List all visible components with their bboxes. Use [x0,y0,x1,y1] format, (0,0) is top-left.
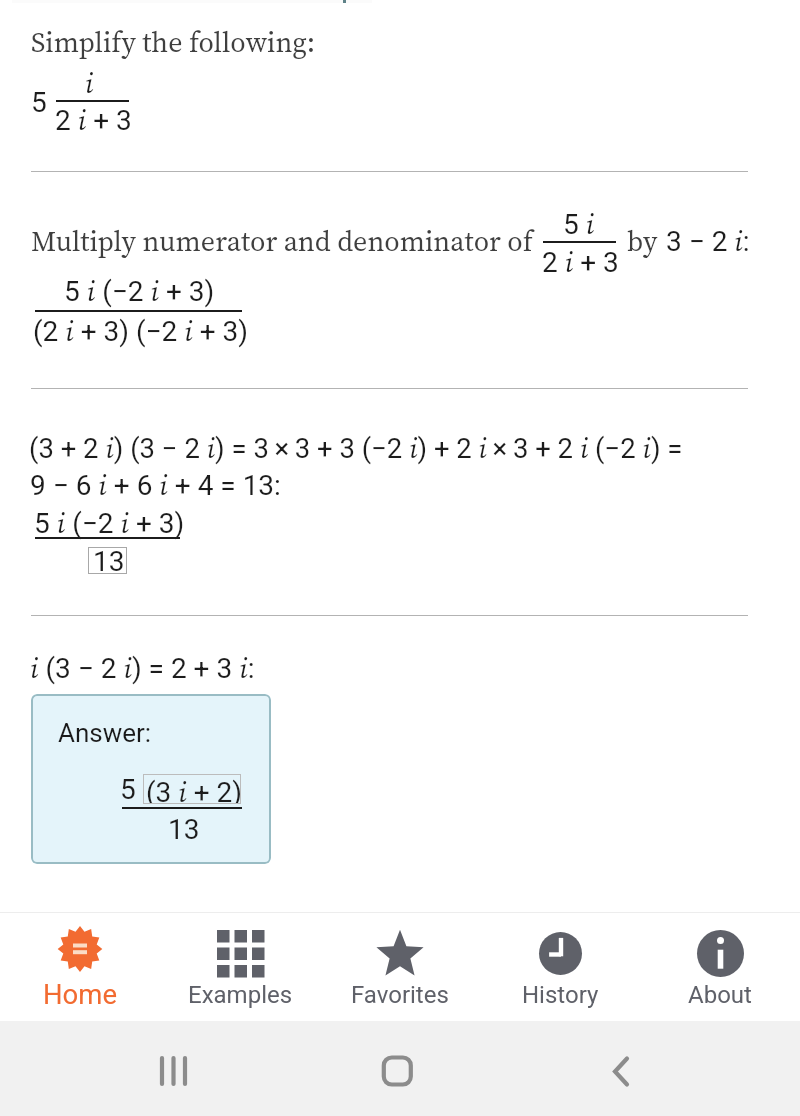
staticText: Answer: [58,718,152,748]
staticText: 13 [93,545,125,572]
staticText: (3 i + 2) [146,773,243,803]
staticText: i [85,64,94,102]
button[interactable]: About [640,912,800,1021]
button[interactable]: Home [0,912,160,1021]
staticText: 5 i (−2 i + 3) [34,504,185,542]
staticText: About [688,981,752,1009]
button[interactable]: Back [597,1046,646,1095]
staticText: 5 i [563,205,595,243]
staticText: 2 i + 3 [55,101,132,139]
staticText: Multiply numerator and denominator of [31,222,533,260]
button[interactable]: Examples [160,912,320,1021]
staticText: 13 [168,813,200,846]
button[interactable]: Favorites [320,912,480,1021]
staticText: 2 i + 3 [542,243,619,281]
button[interactable]: Recent apps [149,1046,198,1095]
staticText: Home [43,978,118,1010]
button[interactable]: History [480,912,640,1021]
staticText: (2 i + 3) (−2 i + 3) [33,312,249,350]
staticText: 9 − 6 i + 6 i + 4 = 13: [30,466,281,504]
staticText: i (3 − 2 i) = 2 + 3 i: [30,649,255,687]
staticText: 5 [120,773,136,806]
staticText: Favorites [351,981,449,1009]
staticText: Simplify the following: [31,23,316,61]
staticText: 5 i (−2 i + 3) [64,272,215,310]
staticText: by [627,222,658,260]
staticText: (3 + 2 i) (3 − 2 i) = 3 × 3 + 3 (−2 i) +… [29,430,683,468]
staticText: 5 [31,86,47,119]
staticText: Examples [188,981,293,1009]
staticText: 3 − 2 i: [666,222,750,260]
staticText: History [522,981,599,1009]
button[interactable]: Home [373,1046,422,1095]
